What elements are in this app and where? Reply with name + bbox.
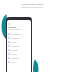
- staticText: Profile details: [11, 33, 21, 35]
- staticText: Appearance: [11, 45, 20, 47]
- staticText: Storage: [11, 53, 17, 55]
- staticText: Manage your profile: [21, 3, 44, 6]
- staticText: Settings: [8, 26, 17, 29]
- button[interactable]: Profile details: [7, 32, 31, 36]
- staticText: Account preferences: [8, 29, 22, 31]
- button[interactable]: About: [7, 60, 31, 64]
- staticText: Privacy: [11, 41, 17, 43]
- button[interactable]: Storage: [7, 52, 31, 56]
- staticText: Update your settings easily: [21, 6, 43, 8]
- button[interactable]: Appearance: [7, 44, 31, 48]
- staticText: Help centre: [11, 57, 20, 59]
- button[interactable]: Privacy: [7, 40, 31, 44]
- staticText: About: [11, 61, 16, 63]
- button[interactable]: Language: [7, 48, 31, 52]
- button[interactable]: Help centre: [7, 56, 31, 60]
- staticText: Language: [11, 49, 19, 51]
- staticText: Notifications: [11, 37, 20, 39]
- button[interactable]: Notifications: [7, 36, 31, 40]
